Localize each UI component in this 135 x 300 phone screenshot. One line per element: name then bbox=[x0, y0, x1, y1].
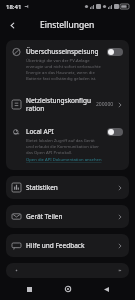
button[interactable]: Statistiken bbox=[6, 176, 129, 199]
button[interactable]: Back bbox=[3, 16, 21, 34]
button[interactable]: Gerät Teilen bbox=[6, 205, 129, 228]
staticText: Local API bbox=[26, 127, 54, 136]
button[interactable]: Hilfe und Feedback bbox=[6, 234, 129, 257]
staticText: 200000 bbox=[96, 101, 114, 108]
button[interactable]: Home bbox=[58, 279, 78, 299]
button[interactable]: Local API bbox=[6, 120, 129, 170]
staticText: Überträgt die von der PV-Anlage erzeugte… bbox=[26, 58, 103, 82]
button[interactable]: Netzleistungskonfigu ration bbox=[6, 89, 129, 120]
staticText: Gerät Teilen bbox=[26, 212, 63, 221]
button[interactable]: Gerät bbox=[6, 263, 129, 278]
staticText: Hilfe und Feedback bbox=[26, 241, 85, 250]
button[interactable]: Überschusseinspeisung bbox=[6, 40, 129, 89]
button[interactable]: Back bbox=[96, 279, 116, 299]
staticText: Bietet lokalen Zugriff auf das Gerät und… bbox=[26, 138, 103, 156]
button[interactable]: Open die API Dokumentation ansehen bbox=[26, 157, 102, 163]
staticText: Netzleistungskonfigu ration bbox=[26, 96, 91, 113]
staticText: Einstellungen bbox=[40, 19, 95, 31]
staticText: Statistiken bbox=[26, 183, 58, 192]
staticText: 18:41 bbox=[6, 3, 22, 11]
button[interactable]: Recent apps bbox=[19, 279, 39, 299]
staticText: Überschusseinspeisung bbox=[26, 47, 99, 56]
button[interactable]: Toggle Überschusseinspeisung bbox=[107, 48, 123, 56]
button[interactable]: Toggle Local API bbox=[107, 128, 123, 136]
